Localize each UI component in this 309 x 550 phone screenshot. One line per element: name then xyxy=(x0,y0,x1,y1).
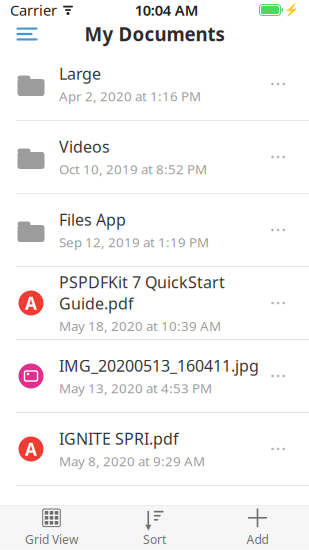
staticText: Grid View xyxy=(25,531,78,547)
staticText: May 18, 2020 at 10:39 AM xyxy=(59,317,221,335)
staticText: Sep 12, 2019 at 1:19 PM xyxy=(59,233,209,251)
button[interactable]: Videos xyxy=(0,121,309,193)
staticText: Add xyxy=(246,531,268,547)
staticText: Apr 2, 2020 at 1:16 PM xyxy=(59,87,201,105)
staticText: A xyxy=(25,437,37,460)
button[interactable]: A xyxy=(0,413,309,485)
button[interactable]: X xyxy=(0,486,309,550)
staticText: ▾ xyxy=(145,520,151,533)
staticText: Blank.xlsx xyxy=(59,501,133,522)
button[interactable]: ▾ xyxy=(103,506,206,550)
staticText: Sort xyxy=(143,531,166,547)
button[interactable]: Grid View xyxy=(0,506,103,550)
staticText: May 5, 2020 at 11:02 AM xyxy=(59,525,213,543)
button[interactable]: Menu xyxy=(0,17,42,51)
staticText: IGNITE SPRI.pdf xyxy=(59,428,179,449)
button[interactable]: Files App xyxy=(0,194,309,266)
staticText: My Documents xyxy=(84,22,224,46)
staticText: IMG_20200513_160411.jpg xyxy=(59,355,259,376)
staticText: 10:04 AM xyxy=(135,0,199,20)
button[interactable]: Add xyxy=(206,506,309,550)
button[interactable]: IMG_20200513_160411.jpg xyxy=(0,340,309,412)
staticText: Oct 10, 2019 at 8:52 PM xyxy=(59,160,207,178)
staticText: May 8, 2020 at 9:29 AM xyxy=(59,452,205,470)
staticText: PSPDFKit 7 QuickStart Guide.pdf xyxy=(59,271,225,314)
staticText: Files App xyxy=(59,209,126,230)
staticText: May 13, 2020 at 4:53 PM xyxy=(59,379,212,397)
button[interactable]: A xyxy=(0,267,309,339)
staticText: Videos xyxy=(59,136,110,157)
staticText: ⚡ xyxy=(284,3,299,17)
staticText: Carrier xyxy=(10,0,57,20)
staticText: A xyxy=(25,291,37,314)
button[interactable]: Large xyxy=(0,48,309,120)
staticText: Large xyxy=(59,63,101,84)
